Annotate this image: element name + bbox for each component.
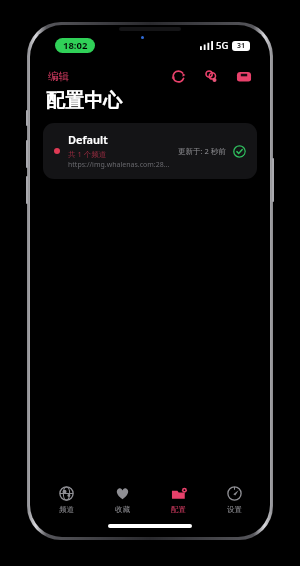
staticText: 频道 [59,505,74,514]
button[interactable]: 收藏 [96,482,148,517]
button[interactable]: 编辑 [45,67,72,86]
staticText: 配置中心 [46,89,122,113]
button[interactable]: 频道 [40,482,92,517]
button[interactable]: 设置 [208,482,260,517]
staticText: 18:02 [63,39,88,52]
button[interactable]: 配置 [152,482,204,517]
staticText: 编辑 [48,70,69,83]
staticText: 31 [237,41,246,51]
staticText: 5G [216,39,229,52]
button[interactable]: Active [232,144,246,158]
staticText: 收藏 [115,505,130,514]
staticText: https://img.whalenas.com:283/file/demo.m… [68,160,172,170]
staticText: 共 1 个频道 [68,149,107,159]
button[interactable]: Toolbox [233,65,255,87]
staticText: 配置 [171,505,186,514]
staticText: Default [68,132,108,147]
button[interactable]: Refresh [167,65,189,87]
button[interactable]: Default [43,123,257,179]
staticText: 更新于: 2 秒前 [178,146,226,156]
staticText: 设置 [227,505,242,514]
button[interactable]: Link [200,65,222,87]
